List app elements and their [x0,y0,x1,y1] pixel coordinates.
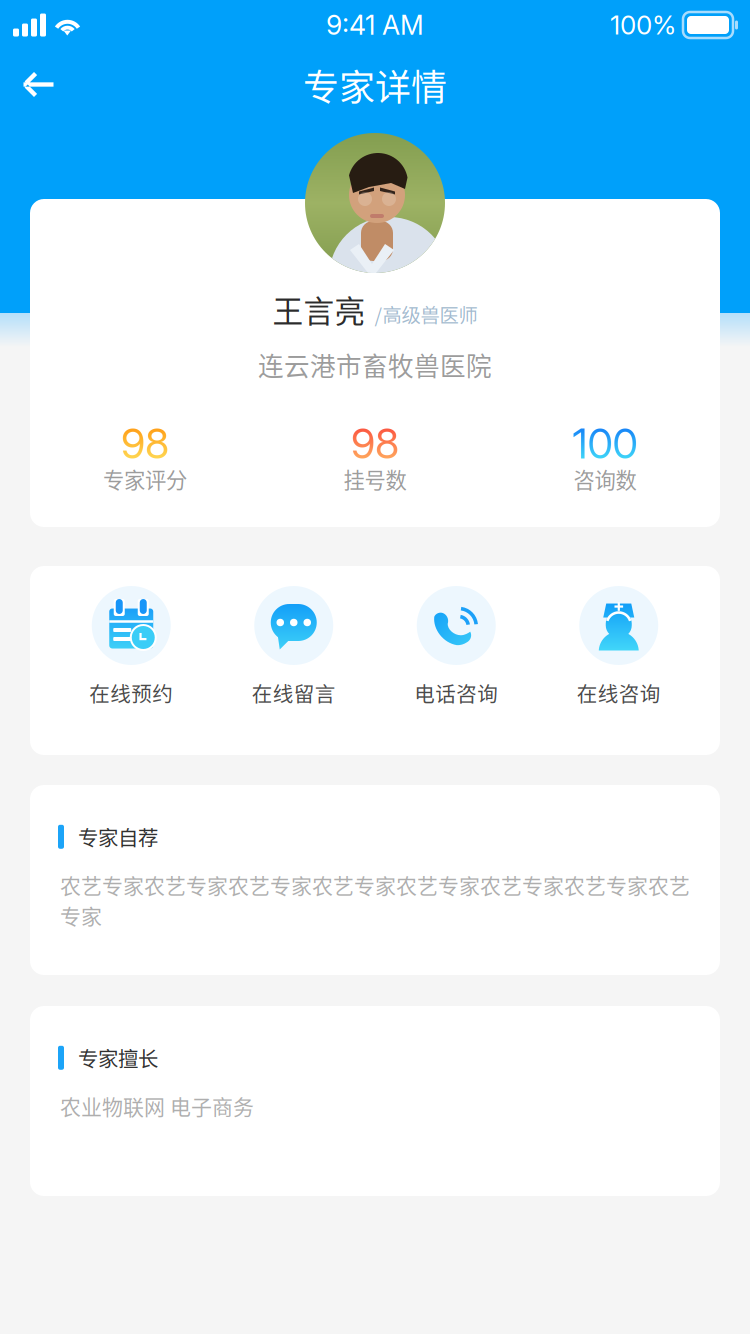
staticText: 王言亮 [272,287,365,331]
staticText: 专家擅长 [78,1043,158,1072]
staticText: 挂号数 [343,463,406,494]
staticText: 专家详情 [303,59,447,111]
button[interactable]: Back [0,50,76,120]
button[interactable]: 在线留言 [212,586,375,708]
staticText: 连云港市畜牧兽医院 [258,346,492,383]
staticText: 专家评分 [103,463,187,494]
staticText: 电话咨询 [414,678,498,708]
button[interactable]: 在线预约 [50,586,212,708]
staticText: 咨询数 [573,463,636,494]
staticText: 在线留言 [252,678,336,708]
staticText: 农业物联网 电子商务 [60,1090,254,1121]
staticText: 农艺专家农艺专家农艺专家农艺专家农艺专家农艺专家农艺专家农艺专家 [60,869,690,930]
button[interactable]: 电话咨询 [375,586,537,708]
staticText: 9:41 AM [326,9,424,41]
staticText: 专家自荐 [78,822,158,851]
staticText: /高级兽医师 [374,300,477,328]
staticText: 在线预约 [89,678,173,708]
button[interactable]: 在线咨询 [537,586,700,708]
staticText: 100% [610,9,676,41]
staticText: 在线咨询 [577,678,661,708]
